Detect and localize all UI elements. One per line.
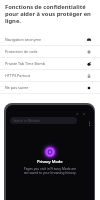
button[interactable]: Navigation anonyme [0, 34, 100, 45]
other: Do not track [85, 84, 93, 92]
staticText: Private Tab Time Bomb [5, 61, 45, 66]
staticText: Navigation anonyme [5, 37, 42, 42]
staticText: Privacy Mode [37, 159, 63, 164]
staticText: Protection de code [5, 49, 38, 54]
staticText: Pages you visit in Privacy Mode are not … [22, 167, 78, 175]
staticText: Ne pas suivre [5, 85, 29, 90]
button[interactable]: Search or Website [10, 117, 77, 124]
other: Private tab time bomb [85, 60, 93, 68]
button[interactable]: Ne pas suivre [0, 82, 100, 93]
staticText: HTTPS Partout [5, 73, 31, 78]
other: Code protection [85, 48, 93, 56]
staticText: Search or Website [13, 119, 40, 123]
button[interactable]: Protection de code [0, 46, 100, 57]
other: More options [87, 121, 92, 127]
staticText: Fonctions de confidentialité pour aider … [5, 3, 96, 25]
button[interactable]: HTTPS Partout [0, 70, 100, 81]
other: Anonymous browsing [85, 36, 93, 44]
other: HTTPS everywhere [85, 72, 93, 80]
button[interactable]: Private Tab Time Bomb [0, 58, 100, 69]
